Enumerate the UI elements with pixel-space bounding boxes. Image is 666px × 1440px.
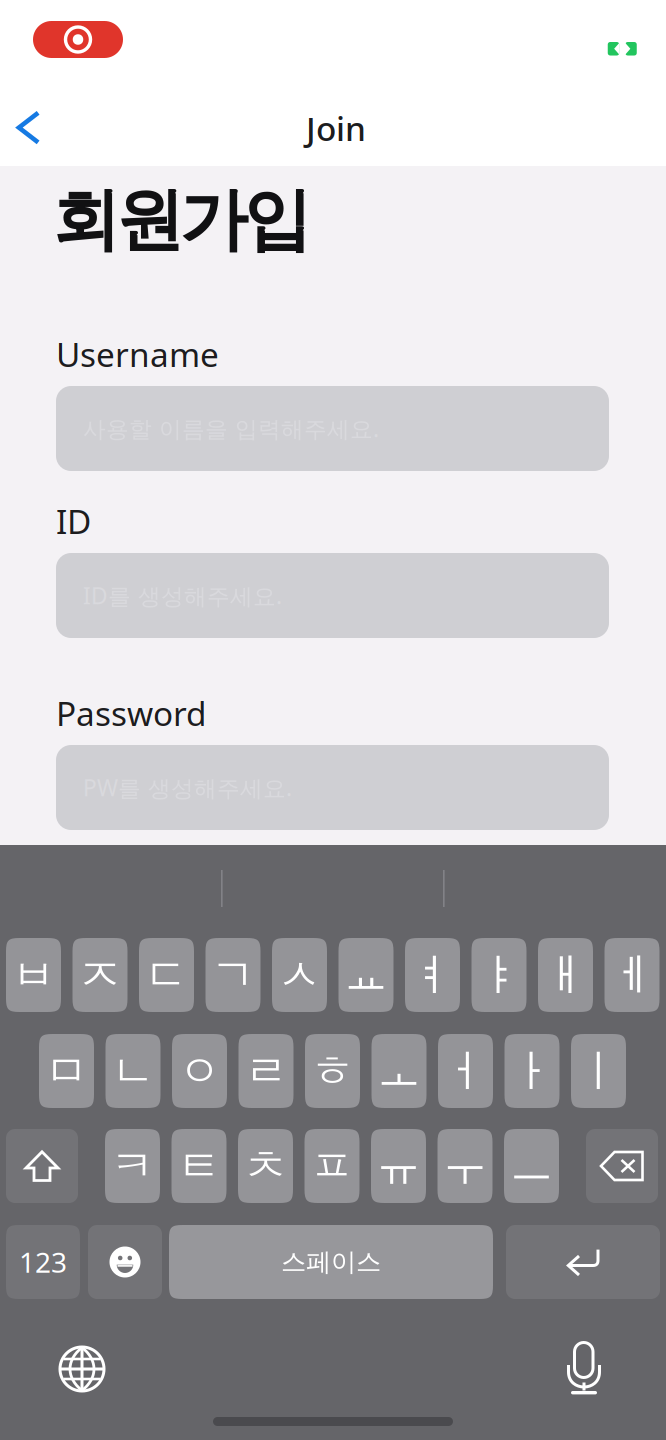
staticText: ㄴ (111, 1044, 155, 1098)
staticText: ㅑ (477, 948, 521, 1002)
staticText: ㅏ (510, 1044, 554, 1098)
staticText: 사용할 이름을 입력해주세요. (83, 413, 379, 443)
staticText: ㅌ (177, 1139, 221, 1193)
button[interactable]: Return (506, 1225, 660, 1299)
button[interactable]: ㅡ (504, 1129, 559, 1203)
staticText: ID를 생성해주세요. (83, 580, 282, 611)
button[interactable]: 스페이스 (169, 1225, 493, 1299)
button[interactable]: ㅊ (238, 1129, 293, 1203)
staticText: ㅣ (576, 1044, 620, 1098)
button[interactable]: ㅏ (504, 1034, 559, 1108)
button[interactable]: ㅑ (471, 938, 526, 1012)
staticText: 123 (19, 1243, 67, 1281)
staticText: ㅓ (443, 1044, 487, 1098)
button[interactable]: ㅕ (405, 938, 460, 1012)
staticText: ㅅ (277, 948, 321, 1002)
button[interactable]: Next keyboard (47, 1334, 117, 1404)
staticText: ㅇ (177, 1044, 221, 1098)
staticText: 스페이스 (281, 1246, 381, 1277)
staticText: ㅍ (310, 1139, 354, 1193)
staticText: ㅎ (310, 1044, 354, 1098)
button[interactable]: Shift (6, 1129, 78, 1203)
staticText: ㄹ (244, 1044, 288, 1098)
button[interactable]: ㅗ (371, 1034, 426, 1108)
button[interactable]: ㅐ (538, 938, 593, 1012)
button[interactable]: Back (0, 96, 60, 158)
staticText: ㄷ (144, 948, 188, 1002)
button[interactable]: ㅋ (105, 1129, 160, 1203)
staticText: Join (306, 106, 366, 150)
button[interactable]: 123 (6, 1225, 80, 1299)
button[interactable]: ㅂ (6, 938, 61, 1012)
button[interactable]: Delete (586, 1129, 658, 1203)
staticText: ID (56, 499, 91, 543)
staticText: ㅗ (377, 1044, 421, 1098)
staticText: ㅂ (11, 948, 55, 1002)
button[interactable]: ㅣ (571, 1034, 626, 1108)
button[interactable]: ㅓ (438, 1034, 493, 1108)
staticText: ㅡ (509, 1139, 553, 1193)
staticText: ㅜ (443, 1139, 487, 1193)
staticText: ㅐ (543, 948, 587, 1002)
button[interactable]: ㄴ (105, 1034, 160, 1108)
button[interactable]: ㄱ (205, 938, 260, 1012)
staticText: Password (56, 691, 207, 735)
button[interactable]: ㄹ (238, 1034, 293, 1108)
staticText: ㅔ (610, 948, 654, 1002)
staticText: ㅁ (44, 1044, 88, 1098)
staticText: PW를 생성해주세요. (83, 772, 292, 803)
button[interactable]: Dictation (550, 1326, 618, 1394)
button[interactable]: ㅌ (171, 1129, 226, 1203)
button[interactable]: ㅠ (371, 1129, 426, 1203)
button[interactable]: ㅍ (304, 1129, 359, 1203)
button[interactable]: ㅈ (72, 938, 127, 1012)
staticText: ㅈ (78, 948, 122, 1002)
staticText: ㅠ (376, 1139, 420, 1193)
staticText: ㅛ (344, 948, 388, 1002)
button[interactable]: ㅇ (172, 1034, 227, 1108)
button[interactable]: ㅛ (338, 938, 393, 1012)
staticText: ㄱ (211, 948, 255, 1002)
button[interactable]: ㅅ (272, 938, 327, 1012)
button[interactable]: ㅁ (39, 1034, 94, 1108)
button[interactable]: ㅔ (604, 938, 659, 1012)
staticText: Username (56, 332, 219, 376)
staticText: ㅕ (410, 948, 454, 1002)
button[interactable]: ㅎ (305, 1034, 360, 1108)
staticText: ㅊ (243, 1139, 287, 1193)
button[interactable]: Emoji (88, 1225, 162, 1299)
staticText: 회원가입 (52, 178, 311, 262)
staticText: ㅋ (110, 1139, 154, 1193)
button[interactable]: ㄷ (139, 938, 194, 1012)
button[interactable]: ㅜ (437, 1129, 492, 1203)
